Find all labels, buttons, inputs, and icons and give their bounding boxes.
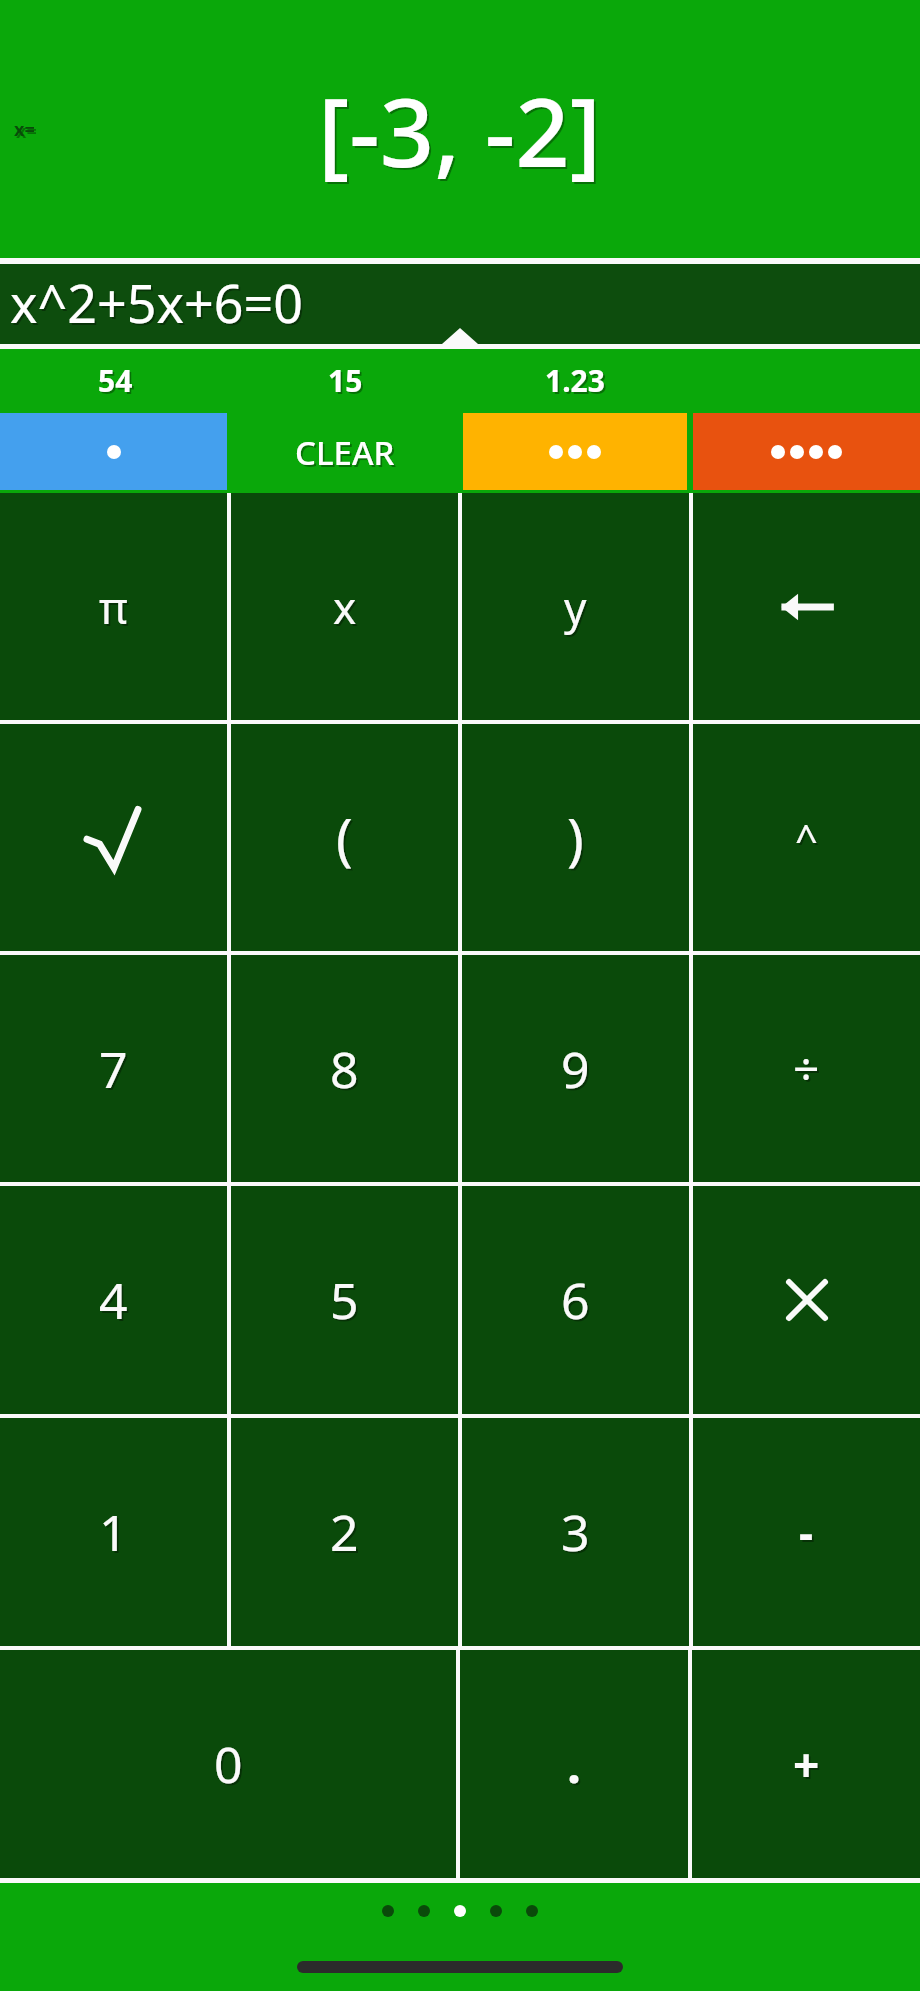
staticText: 5: [332, 1268, 361, 1336]
button[interactable]: (: [231, 724, 458, 951]
button[interactable]: Backspace: [693, 493, 920, 720]
staticText: [-3, -2]: [318, 65, 602, 194]
staticText: CLEAR: [295, 430, 395, 475]
button[interactable]: Three decimals: [463, 413, 687, 490]
staticText: 0: [216, 1732, 245, 1800]
staticText: 7: [101, 1037, 130, 1105]
button[interactable]: CLEAR: [230, 411, 460, 493]
button[interactable]: x: [231, 493, 458, 720]
staticText: x: [335, 579, 359, 639]
staticText: 4: [99, 1266, 128, 1334]
staticText: 9: [563, 1037, 592, 1105]
staticText: 54: [100, 362, 135, 403]
staticText: π: [101, 579, 130, 639]
staticText: 6: [561, 1266, 590, 1334]
staticText: x=: [14, 117, 35, 142]
staticText: ÷: [795, 1039, 822, 1102]
staticText: 1: [99, 1498, 128, 1566]
button[interactable]: ÷: [693, 955, 920, 1182]
button[interactable]: Four decimals: [693, 413, 920, 490]
staticText: x=: [16, 119, 37, 144]
staticText: 3: [563, 1500, 592, 1568]
staticText: 2: [330, 1498, 359, 1566]
button[interactable]: 3: [462, 1418, 689, 1646]
button[interactable]: +: [692, 1650, 920, 1878]
button[interactable]: Square root: [0, 724, 227, 951]
button[interactable]: One decimal: [0, 413, 227, 490]
button[interactable]: .: [460, 1650, 688, 1878]
staticText: 1.23: [547, 362, 607, 403]
staticText: 6: [563, 1268, 592, 1336]
staticText: 15: [330, 362, 365, 403]
staticText: -: [801, 1504, 816, 1564]
button[interactable]: π: [0, 493, 227, 720]
button[interactable]: 6: [462, 1186, 689, 1414]
staticText: 15: [328, 360, 363, 401]
staticText: ^: [797, 813, 820, 867]
button[interactable]: ): [462, 724, 689, 951]
button[interactable]: ^: [693, 724, 920, 951]
staticText: +: [795, 1735, 822, 1798]
button[interactable]: 1: [0, 1418, 227, 1646]
staticText: 1.23: [545, 360, 605, 401]
staticText: [-3, -2]: [320, 67, 604, 196]
staticText: .: [567, 1730, 582, 1798]
staticText: 3: [561, 1498, 590, 1566]
staticText: (: [336, 800, 353, 876]
staticText: 8: [330, 1035, 359, 1103]
staticText: 2: [332, 1500, 361, 1568]
button[interactable]: y: [462, 493, 689, 720]
button[interactable]: 54: [0, 349, 230, 411]
staticText: CLEAR: [297, 432, 397, 477]
staticText: x: [333, 577, 357, 637]
staticText: .: [569, 1732, 584, 1800]
button[interactable]: 5: [231, 1186, 458, 1414]
staticText: 8: [332, 1037, 361, 1105]
staticText: y: [564, 577, 587, 637]
button[interactable]: 8: [231, 955, 458, 1182]
staticText: 1: [101, 1500, 130, 1568]
staticText: 4: [101, 1268, 130, 1336]
staticText: x^2+5x+6=0: [10, 267, 303, 338]
staticText: x^2+5x+6=0: [12, 269, 305, 340]
staticText: 0: [214, 1730, 243, 1798]
staticText: ): [569, 802, 586, 878]
button[interactable]: 0: [0, 1650, 456, 1878]
button[interactable]: 15: [230, 349, 460, 411]
button[interactable]: -: [693, 1418, 920, 1646]
button[interactable]: 7: [0, 955, 227, 1182]
staticText: 9: [561, 1035, 590, 1103]
button[interactable]: 9: [462, 955, 689, 1182]
staticText: +: [793, 1733, 820, 1796]
staticText: π: [99, 577, 128, 637]
staticText: -: [799, 1502, 814, 1562]
staticText: ^: [795, 811, 818, 865]
button[interactable]: 2: [231, 1418, 458, 1646]
button[interactable]: Multiply: [693, 1186, 920, 1414]
button[interactable]: x^2+5x+6=0: [0, 264, 920, 344]
staticText: 5: [330, 1266, 359, 1334]
button[interactable]: 1.23: [460, 349, 690, 411]
button[interactable]: 4: [0, 1186, 227, 1414]
staticText: ): [567, 800, 584, 876]
staticText: 7: [99, 1035, 128, 1103]
staticText: ÷: [793, 1037, 820, 1100]
staticText: 54: [98, 360, 133, 401]
staticText: (: [338, 802, 355, 878]
staticText: y: [566, 579, 589, 639]
